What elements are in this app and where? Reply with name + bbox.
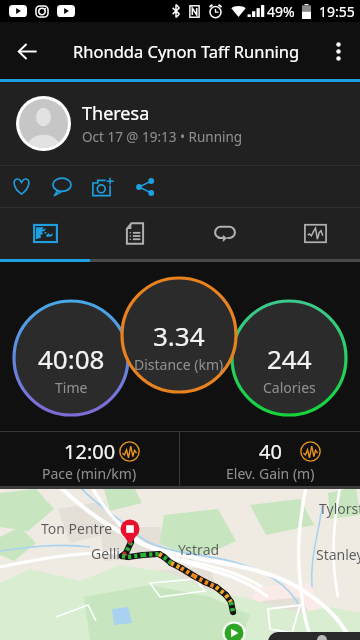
button[interactable]: Photos [0, 208, 90, 259]
staticText: 244 [267, 341, 312, 375]
staticText: 40:08 [38, 341, 105, 375]
button[interactable]: Share [124, 166, 166, 207]
staticText: Distance (km) [134, 355, 224, 374]
staticText: Gelli [91, 544, 120, 563]
staticText: 49% [267, 2, 295, 21]
button[interactable]: Details [90, 208, 180, 259]
staticText: 12:00 [64, 438, 116, 464]
staticText: 19:55 [319, 2, 355, 21]
staticText: Stanley [316, 545, 360, 564]
button[interactable]: Comment [42, 166, 82, 207]
staticText: Ystrad [178, 540, 220, 559]
staticText: 3.34 [153, 318, 205, 352]
staticText: Tylorstone [319, 499, 360, 518]
staticText: Oct 17 @ 19:13 • Running [82, 128, 243, 146]
staticText: 40 [259, 438, 282, 464]
staticText: Ton Pentre [41, 519, 113, 538]
button[interactable]: Graph [270, 208, 360, 259]
staticText: Theresa [82, 101, 150, 126]
staticText: Elev. Gain (m) [226, 464, 315, 483]
staticText: Calories [263, 378, 316, 397]
button[interactable]: Laps [180, 208, 270, 259]
staticText: Time [55, 378, 88, 397]
button[interactable]: 12:00 [0, 432, 179, 486]
staticText: Rhondda Cynon Taff Running [73, 40, 300, 62]
button[interactable]: Back [0, 24, 54, 78]
button[interactable]: Like [0, 166, 42, 207]
button[interactable]: 40 [180, 432, 360, 486]
staticText: Pace (min/km) [42, 464, 137, 483]
button[interactable]: More options [316, 29, 360, 73]
button[interactable]: Add photo [82, 166, 124, 207]
